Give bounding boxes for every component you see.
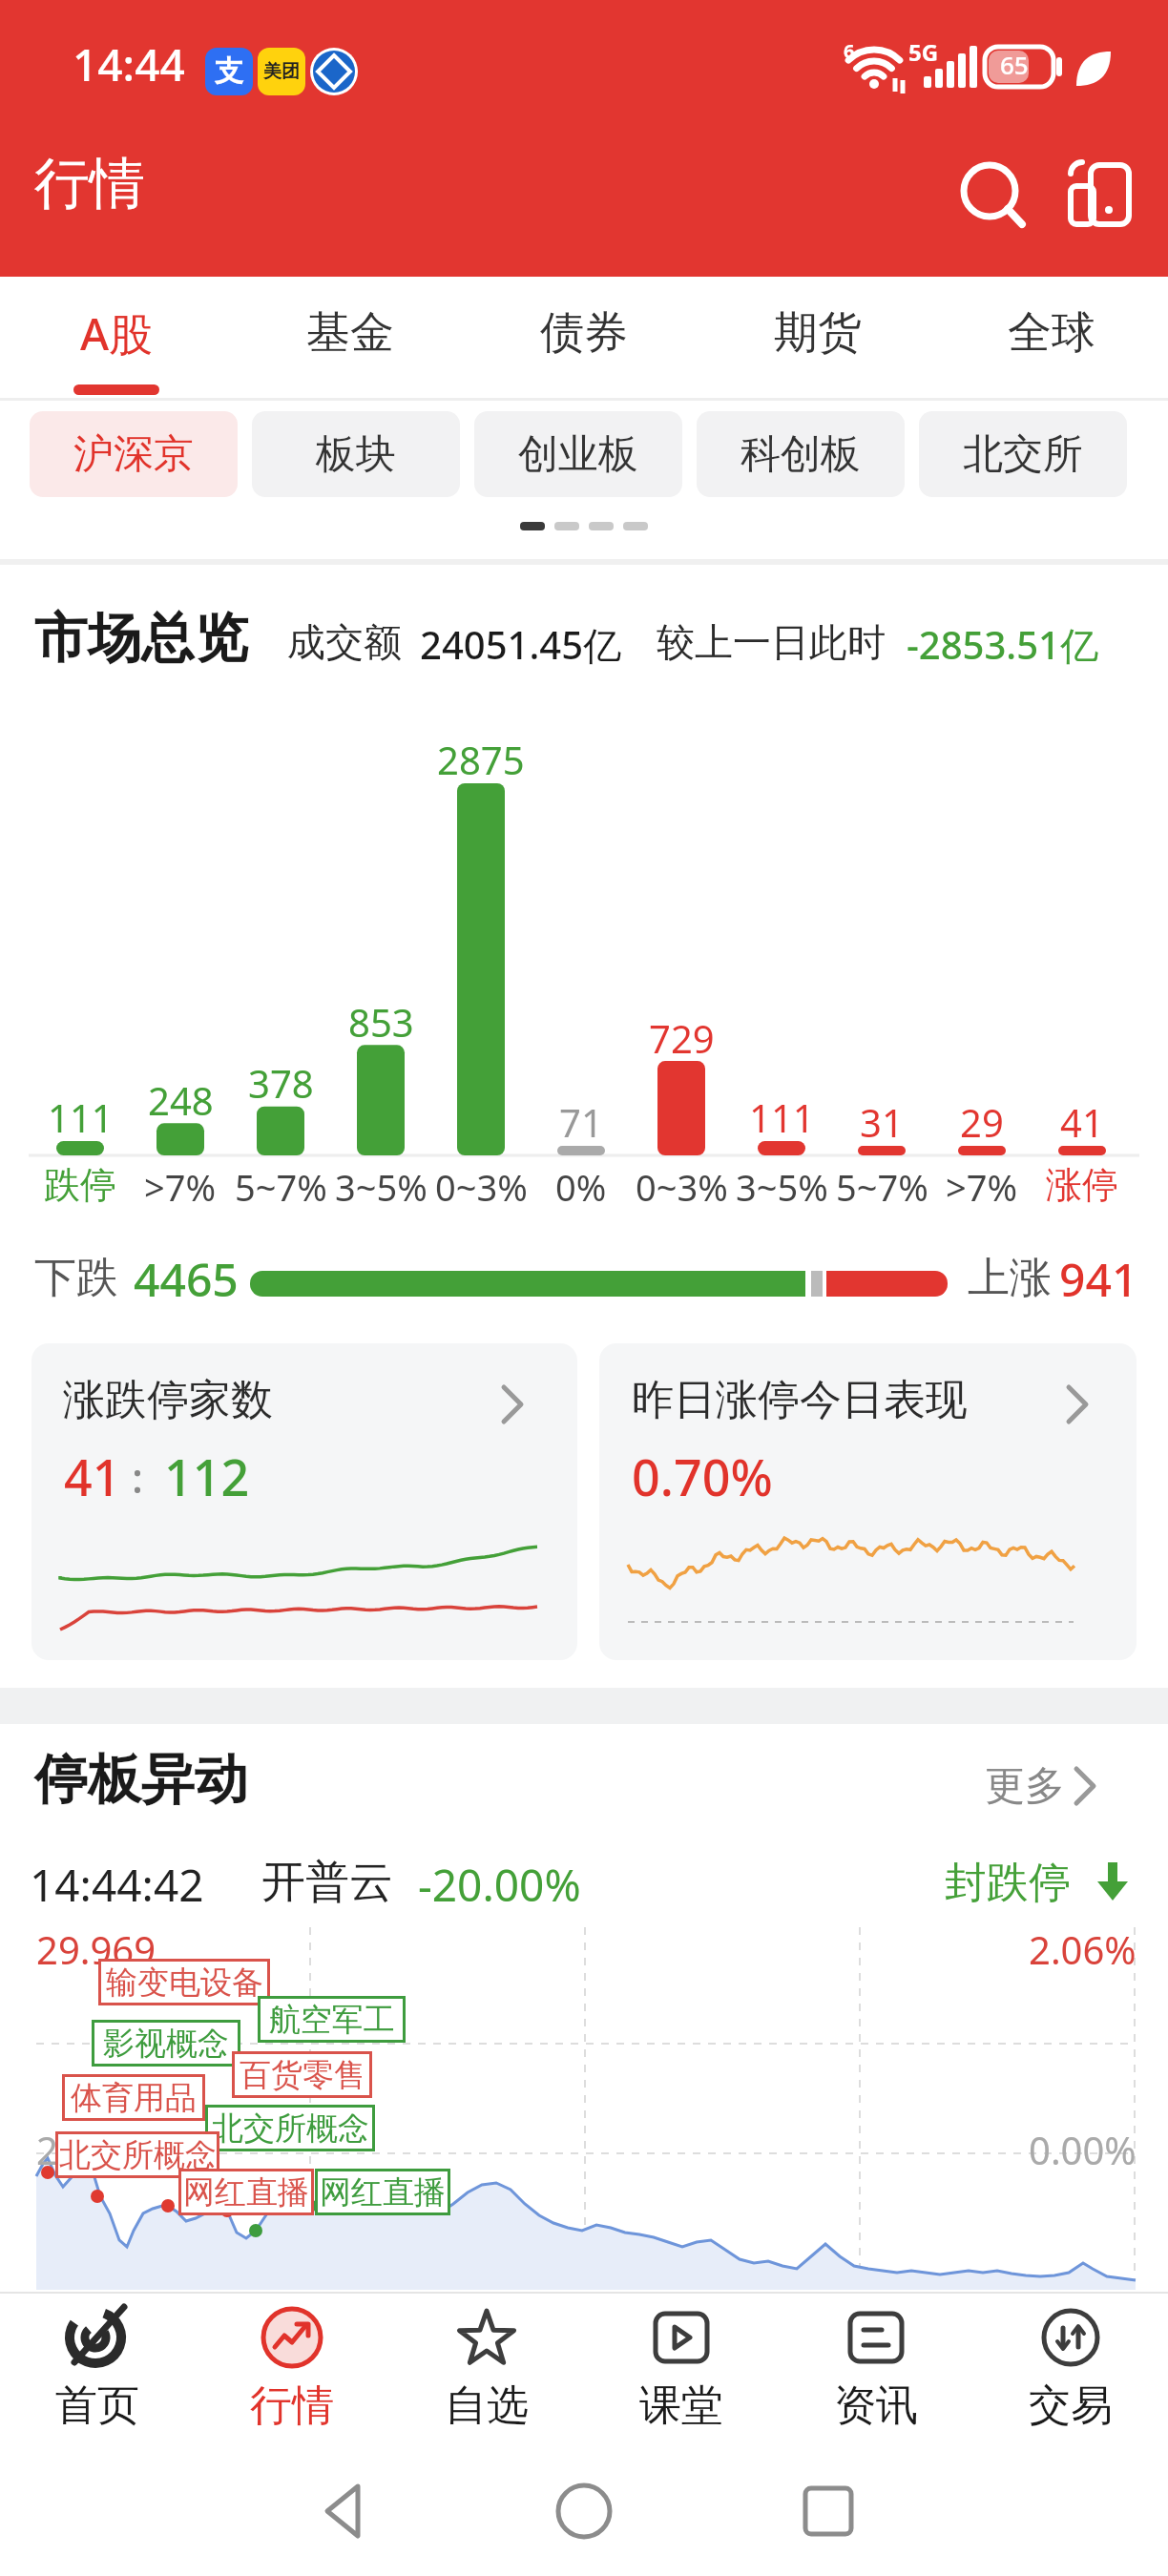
staticText: 北交所概念: [212, 2109, 369, 2149]
staticText: 课堂: [639, 2379, 723, 2432]
staticText: 5~7%: [235, 1162, 327, 1212]
staticText: 涨跌停家数: [63, 1374, 273, 1426]
staticText: A股: [80, 303, 154, 364]
staticText: 3~5%: [736, 1162, 828, 1212]
staticText: 成交额: [287, 618, 402, 666]
staticText: 网红直播: [320, 2172, 446, 2212]
staticText: 853: [348, 996, 414, 1048]
staticText: 941: [1059, 1248, 1138, 1310]
staticText: 较上一日此时: [657, 618, 886, 666]
staticText: 729: [649, 1012, 715, 1064]
staticText: 百货零售: [240, 2055, 365, 2095]
staticText: -20.00%: [418, 1855, 581, 1915]
staticText: 航空军工: [269, 2000, 395, 2040]
staticText: 影视概念: [103, 2024, 229, 2064]
button[interactable]: 全球: [947, 277, 1157, 389]
button[interactable]: 板块: [252, 411, 460, 497]
staticText: 29: [960, 1096, 1004, 1148]
button[interactable]: [0, 2292, 195, 2442]
staticText: 6: [844, 38, 855, 64]
staticText: 输变电设备: [106, 1963, 263, 2003]
button[interactable]: A股: [11, 277, 221, 389]
button[interactable]: 基金: [245, 277, 455, 389]
staticText: 29.969: [36, 1923, 156, 1975]
staticText: 美团: [263, 60, 300, 83]
staticText: 北交所: [963, 429, 1083, 480]
staticText: 科创板: [740, 429, 861, 480]
staticText: 4465: [134, 1248, 239, 1310]
staticText: 24051.45亿: [420, 618, 622, 671]
staticText: 0~3%: [636, 1162, 728, 1212]
staticText: >7%: [144, 1162, 217, 1212]
button[interactable]: [389, 2292, 584, 2442]
staticText: 首页: [55, 2379, 139, 2432]
staticText: 5~7%: [836, 1162, 928, 1212]
staticText: 14:44: [73, 34, 185, 94]
staticText: 2875: [437, 734, 525, 785]
button[interactable]: [973, 2292, 1168, 2442]
staticText: 资讯: [834, 2379, 918, 2432]
button[interactable]: [584, 2292, 779, 2442]
staticText: 支: [215, 53, 243, 90]
staticText: 基金: [306, 305, 394, 361]
staticText: 下跌: [34, 1252, 118, 1304]
staticText: 市场总览: [34, 605, 248, 673]
staticText: 交易: [1029, 2379, 1113, 2432]
staticText: 更多: [985, 1761, 1065, 1812]
button[interactable]: 北交所: [919, 411, 1127, 497]
staticText: 111: [749, 1091, 815, 1143]
staticText: 111: [48, 1091, 114, 1143]
staticText: 期货: [774, 305, 862, 361]
staticText: 31: [860, 1096, 904, 1148]
staticText: 0.70%: [632, 1443, 773, 1510]
staticText: 2.06%: [1029, 1923, 1137, 1975]
staticText: 41: [1060, 1096, 1104, 1148]
staticText: 跌停: [44, 1162, 116, 1208]
staticText: 昨日涨停今日表现: [632, 1374, 968, 1426]
staticText: 行情: [250, 2379, 334, 2432]
staticText: 开普云: [261, 1855, 393, 1910]
staticText: 29.80: [36, 2124, 135, 2175]
staticText: 上涨: [968, 1252, 1052, 1304]
staticText: 体育用品: [71, 2078, 197, 2118]
button[interactable]: [949, 153, 1030, 233]
staticText: 板块: [316, 429, 396, 480]
staticText: 14:44:42: [30, 1855, 204, 1915]
staticText: :: [132, 1448, 143, 1506]
staticText: 网红直播: [183, 2172, 309, 2212]
staticText: 停板异动: [34, 1746, 248, 1814]
button[interactable]: 债券: [479, 277, 689, 389]
staticText: 沪深京: [73, 429, 194, 480]
staticText: 378: [248, 1057, 314, 1109]
staticText: 债券: [540, 305, 628, 361]
staticText: 41: [64, 1443, 121, 1510]
staticText: -2853.51亿: [907, 618, 1098, 671]
staticText: 北交所概念: [59, 2135, 217, 2175]
staticText: 封跌停: [945, 1857, 1071, 1909]
staticText: 行情: [34, 149, 145, 218]
staticText: 0~3%: [435, 1162, 528, 1212]
staticText: 248: [148, 1074, 214, 1126]
staticText: 创业板: [518, 429, 638, 480]
staticText: 自选: [445, 2379, 529, 2432]
button[interactable]: 沪深京: [30, 411, 238, 497]
staticText: 71: [559, 1096, 603, 1148]
button[interactable]: [195, 2292, 389, 2442]
staticText: 3~5%: [335, 1162, 428, 1212]
button[interactable]: [599, 1343, 1137, 1660]
button[interactable]: 科创板: [697, 411, 905, 497]
button[interactable]: [1061, 153, 1141, 233]
staticText: 涨停: [1046, 1162, 1118, 1208]
staticText: 112: [164, 1443, 250, 1510]
staticText: 全球: [1008, 305, 1095, 361]
staticText: 5G: [908, 36, 939, 68]
button[interactable]: 期货: [713, 277, 923, 389]
staticText: 0.00%: [1029, 2124, 1137, 2175]
staticText: >7%: [946, 1162, 1018, 1212]
button[interactable]: 创业板: [474, 411, 682, 497]
staticText: 0%: [555, 1162, 607, 1212]
button[interactable]: [31, 1343, 577, 1660]
staticText: 65: [1000, 48, 1029, 81]
button[interactable]: [779, 2292, 973, 2442]
